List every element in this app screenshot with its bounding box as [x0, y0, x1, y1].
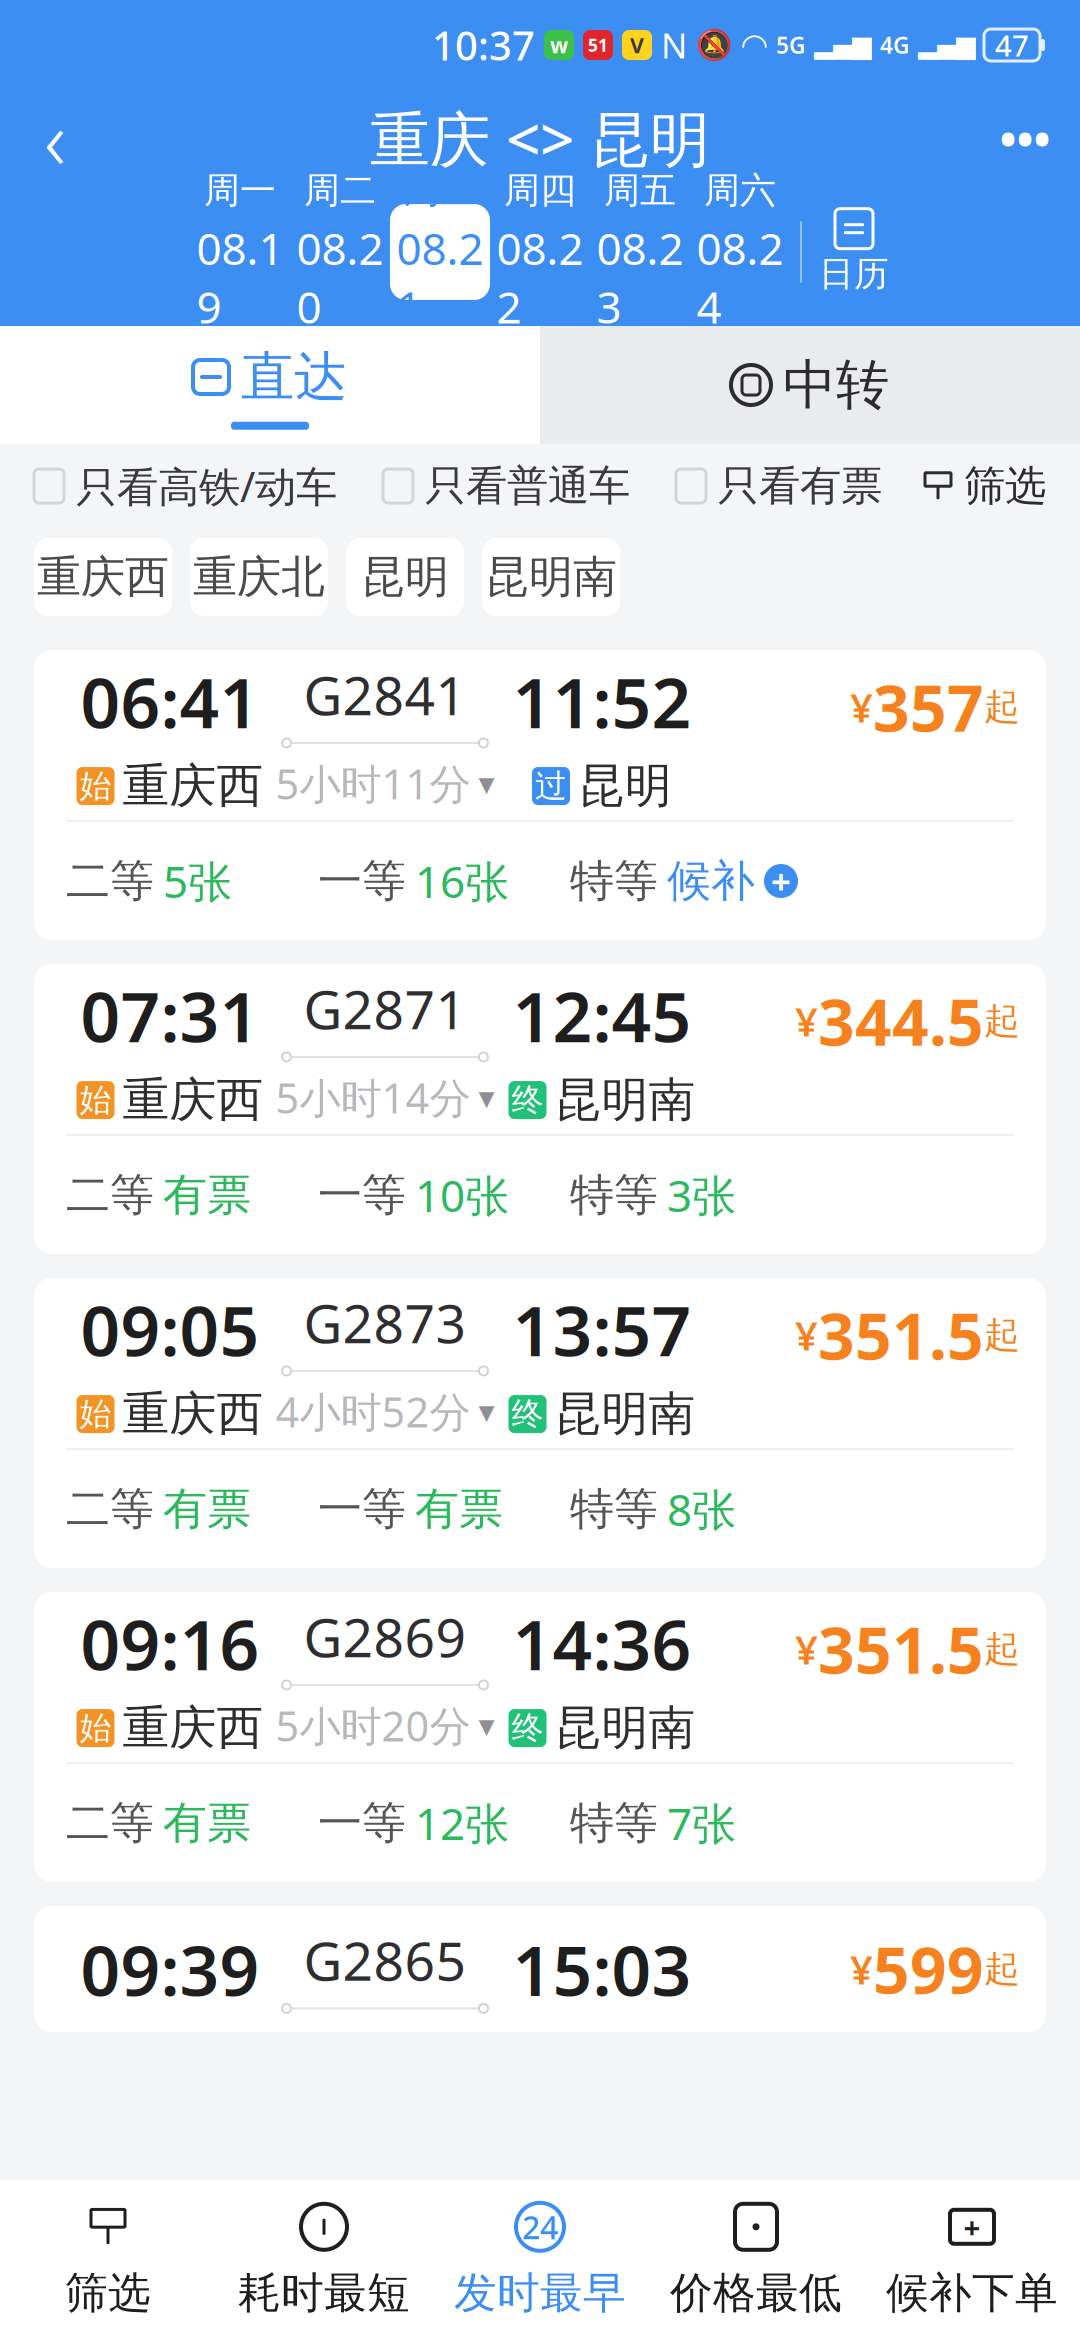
staticText: 14:36 [512, 1597, 691, 1689]
staticText: 周一 [204, 168, 276, 213]
staticText: 3张 [667, 1166, 736, 1224]
staticText: 344.5 [818, 978, 984, 1063]
staticText: 昆明 [361, 550, 449, 604]
button[interactable]: 耗时最短 [216, 2185, 432, 2335]
staticText: 12张 [415, 1794, 509, 1852]
staticText: 只看普通车 [425, 461, 630, 511]
staticText: 筛选 [65, 2267, 151, 2319]
button[interactable]: 筛选 [922, 451, 1046, 521]
staticText: 只看有票 [718, 461, 882, 511]
staticText: 起 [984, 1627, 1020, 1671]
button[interactable]: 07:31 [34, 964, 1046, 1254]
staticText: 10:37 [432, 18, 535, 71]
staticText: 一等 [318, 854, 406, 908]
staticText: 351.5 [818, 1606, 984, 1691]
staticText: 重庆西 [122, 1071, 263, 1129]
staticText: 始 [79, 766, 111, 806]
button[interactable]: + [864, 2185, 1080, 2335]
button[interactable]: 周二 [290, 204, 390, 300]
staticText: 一等 [318, 1796, 406, 1850]
staticText: 4G [880, 30, 909, 60]
staticText: 重庆 <> 昆明 [370, 98, 710, 178]
staticText: 7张 [667, 1794, 736, 1852]
button[interactable]: 周一 [190, 204, 290, 300]
staticText: 5小时14分 [275, 1070, 470, 1125]
staticText: 始 [79, 1708, 111, 1748]
button[interactable]: 日历 [802, 202, 906, 302]
button[interactable]: 筛选 [0, 2185, 216, 2335]
staticText: ▾ [478, 1707, 494, 1744]
button[interactable]: Back [0, 90, 110, 186]
staticText: 重庆北 [193, 550, 325, 604]
staticText: G2869 [303, 1601, 466, 1672]
button[interactable]: 价格最低 [648, 2185, 864, 2335]
staticText: 特等 [570, 1796, 658, 1850]
staticText: 筛选 [964, 461, 1046, 511]
staticText: + [963, 2207, 980, 2246]
button[interactable]: 周三 [390, 204, 490, 300]
staticText: w [550, 31, 568, 59]
staticText: 有票 [163, 1168, 251, 1222]
staticText: 二等 [66, 1796, 154, 1850]
button[interactable]: 09:16 [34, 1592, 1046, 1882]
staticText: 始 [79, 1394, 111, 1434]
staticText: 一等 [318, 1482, 406, 1536]
button[interactable]: 重庆西 [34, 538, 172, 616]
button[interactable]: 直达 [0, 326, 540, 444]
button[interactable]: 只看有票 [676, 451, 882, 521]
staticText: ¥ [850, 1942, 873, 1995]
staticText: ¥ [795, 1622, 818, 1675]
staticText: 一等 [318, 1168, 406, 1222]
button[interactable]: 昆明南 [482, 538, 620, 616]
staticText: 有票 [163, 1796, 251, 1850]
button[interactable]: 周六 [690, 204, 790, 300]
staticText: 重庆西 [122, 1699, 263, 1757]
staticText: 昆明南 [554, 1385, 695, 1443]
button[interactable]: 只看普通车 [383, 451, 630, 521]
staticText: 09:05 [80, 1283, 259, 1375]
staticText: G2873 [303, 1287, 466, 1358]
staticText: 二等 [66, 854, 154, 908]
button[interactable]: 昆明 [346, 538, 464, 616]
staticText: 4小时52分 [275, 1384, 470, 1439]
button[interactable]: 重庆北 [190, 538, 328, 616]
staticText: 特等 [570, 1482, 658, 1536]
staticText: G2871 [303, 973, 466, 1044]
staticText: 价格最低 [670, 2267, 842, 2319]
staticText: ◠ [742, 27, 767, 63]
staticText: 599 [873, 1926, 984, 2011]
staticText: 终 [511, 1708, 543, 1748]
staticText: 二等 [66, 1482, 154, 1536]
staticText: 12:45 [512, 969, 691, 1061]
button[interactable]: 周四 [490, 204, 590, 300]
staticText: 🔕 [696, 28, 733, 62]
button[interactable]: 周五 [590, 204, 690, 300]
staticText: 昆明南 [554, 1699, 695, 1757]
staticText: ▂▄▆ [918, 31, 975, 59]
button[interactable]: 中转 [540, 326, 1080, 444]
button[interactable]: 09:05 [34, 1278, 1046, 1568]
staticText: 11:52 [512, 655, 691, 747]
staticText: 5小时11分 [275, 756, 470, 811]
staticText: 5G [776, 30, 805, 60]
staticText: 中转 [783, 352, 889, 418]
staticText: 5张 [163, 852, 232, 910]
staticText: 351.5 [818, 1292, 984, 1377]
staticText: 重庆西 [122, 757, 263, 815]
staticText: ¥ [850, 680, 873, 733]
staticText: 特等 [570, 854, 658, 908]
staticText: G2865 [303, 1925, 466, 1995]
button[interactable]: 24 [432, 2185, 648, 2335]
staticText: 8张 [667, 1480, 736, 1538]
staticText: 特等 [570, 1168, 658, 1222]
staticText: 08.20 [296, 219, 383, 336]
staticText: 08.24 [696, 219, 783, 336]
staticText: 重庆西 [122, 1385, 263, 1443]
staticText: 重庆西 [37, 550, 169, 604]
staticText: ‹ [44, 83, 66, 193]
staticText: 昆明 [578, 757, 672, 815]
staticText: 08.23 [596, 219, 683, 336]
button[interactable]: 只看高铁/动车 [34, 451, 337, 521]
button[interactable]: 06:41 [34, 650, 1046, 940]
button[interactable]: More options [970, 90, 1080, 186]
